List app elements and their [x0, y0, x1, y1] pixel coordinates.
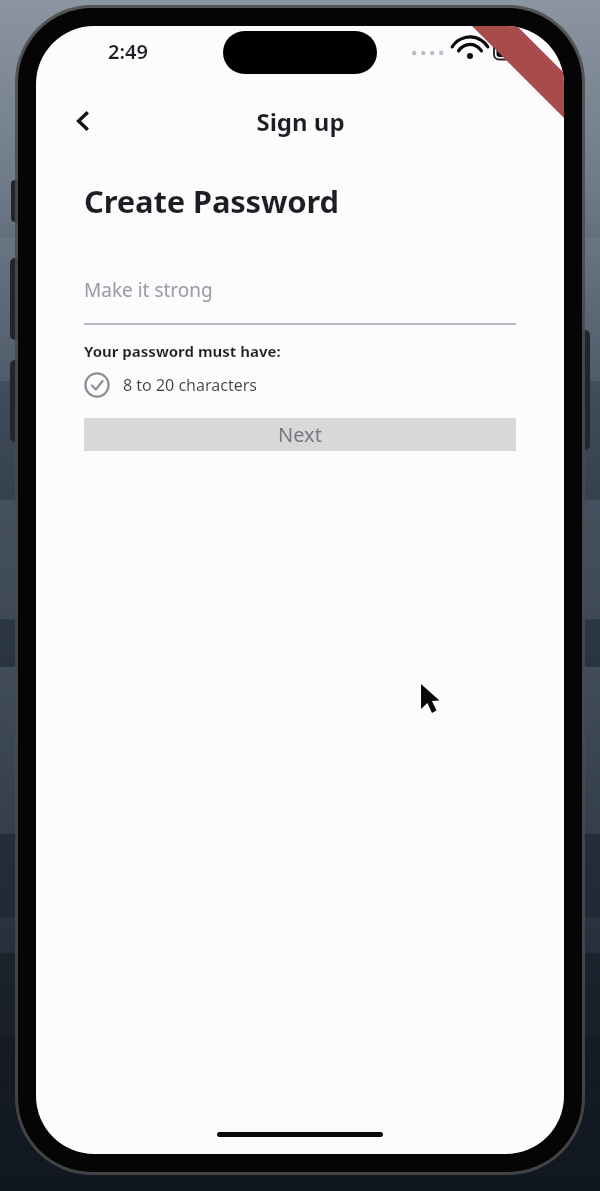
button[interactable]: Back — [62, 100, 104, 142]
staticText: Create Password — [84, 180, 339, 222]
staticText: Your password must have: — [84, 341, 281, 361]
button[interactable]: Make it strong — [84, 277, 516, 325]
staticText: Make it strong — [84, 277, 213, 303]
button[interactable]: Next — [84, 418, 516, 451]
staticText: Sign up — [256, 105, 345, 138]
staticText: Next — [278, 421, 322, 448]
staticText: 8 to 20 characters — [123, 374, 257, 396]
staticText: 2:49 — [108, 38, 148, 65]
